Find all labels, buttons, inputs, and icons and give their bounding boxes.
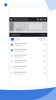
button[interactable]: Item <box>9 65 47 70</box>
button[interactable]: Search <box>9 17 47 22</box>
button[interactable]: Filter <box>11 38 14 41</box>
button[interactable]: Item <box>9 59 47 65</box>
button[interactable]: Item <box>9 53 47 59</box>
button[interactable]: Item <box>9 70 47 76</box>
button[interactable]: Item <box>9 42 47 47</box>
button[interactable]: Sort <box>38 38 46 41</box>
button[interactable]: Item <box>9 47 47 53</box>
